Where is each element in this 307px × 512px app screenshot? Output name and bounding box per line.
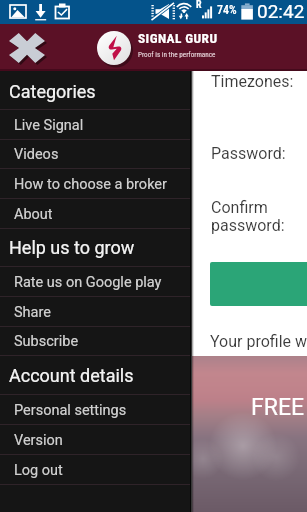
button[interactable]: Close navigation drawer xyxy=(3,26,51,69)
button[interactable]: Help us to grow xyxy=(0,228,190,267)
staticText: Account details xyxy=(9,365,134,386)
button[interactable]: Version xyxy=(0,425,190,455)
staticText: Categories xyxy=(9,81,96,102)
staticText: 02:42 xyxy=(257,0,305,22)
staticText: Confirm password: xyxy=(211,198,285,235)
staticText: About xyxy=(14,206,53,223)
staticText: Log out xyxy=(14,462,63,479)
staticText: Videos xyxy=(14,146,59,163)
button[interactable]: Share xyxy=(0,297,190,327)
staticText: SIGNAL GURU xyxy=(138,31,218,47)
button[interactable] xyxy=(210,262,307,306)
staticText: Subscribe xyxy=(14,333,79,350)
button[interactable]: Subscribe xyxy=(0,326,190,356)
button[interactable]: Account details xyxy=(0,356,190,395)
button[interactable]: How to choose a broker xyxy=(0,170,190,199)
staticText: 74% xyxy=(217,3,237,17)
staticText: Live Signal xyxy=(14,117,84,134)
staticText: Password: xyxy=(211,144,286,163)
staticText: Rate us on Google play xyxy=(14,274,162,291)
button[interactable]: Live Signal xyxy=(0,110,190,140)
staticText: Share xyxy=(14,304,51,321)
button[interactable]: Videos xyxy=(0,140,190,169)
staticText: Your profile w xyxy=(210,332,307,351)
staticText: How to choose a broker xyxy=(14,176,167,193)
staticText: R xyxy=(196,0,202,11)
staticText: Proof is in the performance xyxy=(138,50,216,58)
button[interactable]: Rate us on Google play xyxy=(0,268,190,297)
staticText: Version xyxy=(14,432,63,449)
staticText: Personal settings xyxy=(14,402,127,419)
button[interactable]: Categories xyxy=(0,72,190,110)
staticText: Help us to grow xyxy=(9,237,135,258)
staticText: FREE xyxy=(251,394,305,421)
button[interactable]: Log out xyxy=(0,455,190,485)
staticText: Timezones: xyxy=(211,72,294,91)
button[interactable]: Personal settings xyxy=(0,395,190,425)
button[interactable]: About xyxy=(0,199,190,229)
